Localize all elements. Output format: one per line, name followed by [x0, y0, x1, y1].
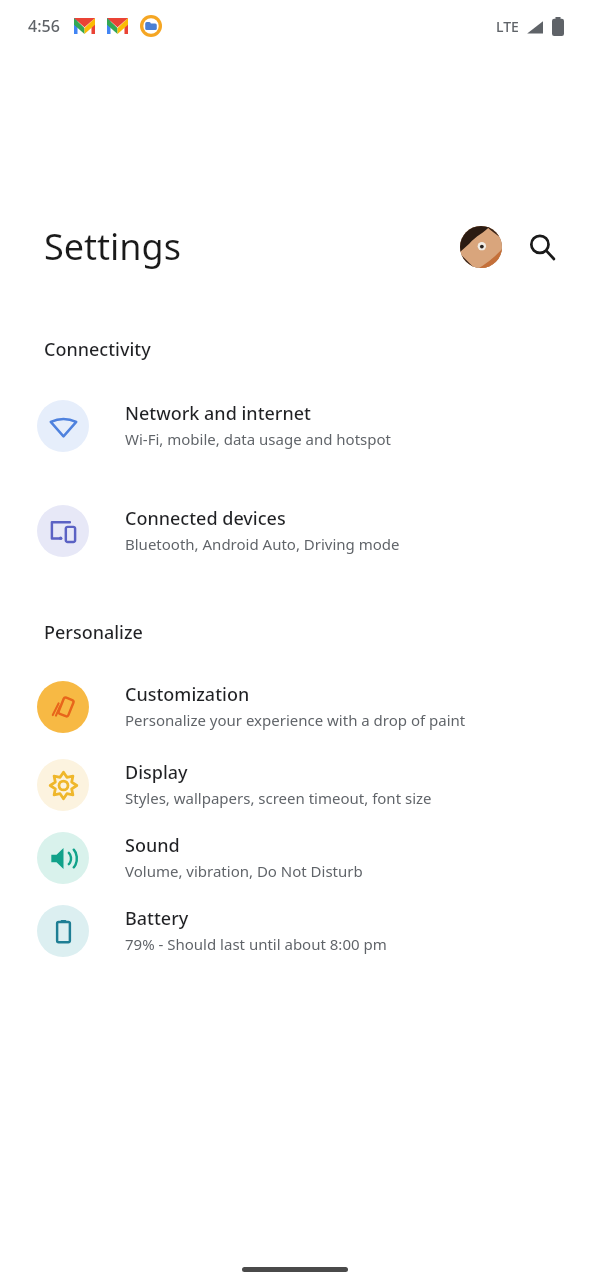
button[interactable]: Battery	[0, 884, 590, 957]
staticText: Display	[125, 760, 188, 785]
staticText: Connected devices	[125, 506, 286, 531]
staticText: Settings	[44, 222, 181, 271]
button[interactable]: Account	[460, 226, 502, 268]
button[interactable]: Search settings	[520, 225, 564, 269]
staticText: Connectivity	[44, 337, 151, 362]
staticText: 79% - Should last until about 8:00 pm	[125, 934, 387, 954]
staticText: Network and internet	[125, 401, 311, 426]
button[interactable]: Display	[0, 733, 590, 811]
staticText: Personalize	[44, 620, 143, 645]
staticText: Bluetooth, Android Auto, Driving mode	[125, 534, 400, 554]
staticText: Sound	[125, 833, 180, 858]
staticText: 4:56	[28, 15, 60, 37]
staticText: LTE	[496, 17, 519, 36]
button[interactable]: Customization	[0, 645, 590, 733]
button[interactable]: Network and internet	[0, 362, 590, 472]
button[interactable]: Sound	[0, 811, 590, 884]
staticText: Wi-Fi, mobile, data usage and hotspot	[125, 429, 391, 449]
staticText: Styles, wallpapers, screen timeout, font…	[125, 788, 432, 808]
staticText: Customization	[125, 682, 250, 707]
staticText: Battery	[125, 906, 189, 931]
staticText: Volume, vibration, Do Not Disturb	[125, 861, 363, 881]
button[interactable]: Connected devices	[0, 472, 590, 557]
staticText: Personalize your experience with a drop …	[125, 710, 466, 730]
